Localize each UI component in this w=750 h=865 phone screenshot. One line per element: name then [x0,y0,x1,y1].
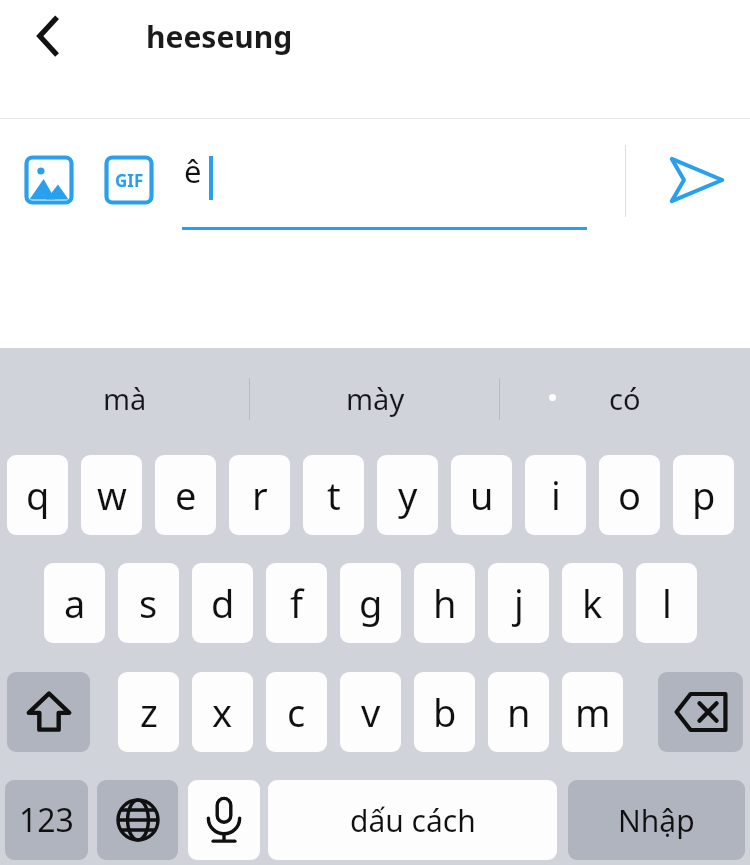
staticText: u [470,469,494,521]
staticText: x [212,686,233,738]
button[interactable]: v [340,672,401,752]
staticText: Nhập [618,800,695,841]
button[interactable]: c [266,672,327,752]
staticText: h [433,577,457,629]
button[interactable]: o [599,455,660,535]
button[interactable]: n [488,672,549,752]
staticText: n [507,686,531,738]
staticText: heeseung [146,16,293,57]
staticText: f [290,577,304,629]
button[interactable]: m [562,672,623,752]
button[interactable]: r [229,455,290,535]
staticText: r [252,469,268,521]
staticText: e [175,469,197,521]
staticText: s [139,577,158,629]
staticText: ê [184,150,202,192]
button[interactable]: x [192,672,253,752]
staticText: i [551,469,561,521]
button[interactable]: u [451,455,512,535]
staticText: l [662,577,672,629]
button[interactable]: b [414,672,475,752]
staticText: mà [103,379,147,418]
button[interactable]: z [118,672,179,752]
button[interactable]: Backspace [658,672,743,752]
staticText: GIF [115,169,144,192]
staticText: mày [346,379,405,418]
button[interactable]: e [155,455,216,535]
staticText: j [514,577,524,629]
staticText: w [97,469,127,521]
staticText: o [618,469,641,521]
staticText: a [64,577,86,629]
staticText: g [359,577,383,629]
button[interactable]: mày [250,348,500,448]
button[interactable]: y [377,455,438,535]
button[interactable]: dấu cách [268,780,557,860]
button[interactable]: 123 [5,780,88,860]
staticText: dấu cách [350,800,476,841]
staticText: d [211,577,235,629]
button[interactable]: Send [655,148,735,212]
staticText: có [609,379,641,418]
button[interactable]: Shift [7,672,90,752]
button[interactable]: s [118,563,179,643]
button[interactable]: a [44,563,105,643]
staticText: z [140,686,158,738]
staticText: k [582,577,603,629]
staticText: c [287,686,306,738]
button[interactable]: l [636,563,697,643]
staticText: q [26,469,50,521]
button[interactable]: t [303,455,364,535]
button[interactable]: Send photo [18,150,80,210]
button[interactable]: Nhập [568,780,745,860]
button[interactable]: ê [182,146,587,230]
button[interactable]: Change language [97,780,178,860]
button[interactable]: w [81,455,142,535]
staticText: m [575,686,611,738]
button[interactable]: Send GIF [98,150,160,210]
button[interactable]: Voice input [188,780,260,860]
button[interactable]: j [488,563,549,643]
button[interactable]: q [7,455,68,535]
staticText: p [692,469,716,521]
staticText: v [361,686,381,738]
staticText: 123 [19,798,74,842]
staticText: b [433,686,457,738]
staticText: y [398,469,418,521]
button[interactable]: Back [14,7,72,63]
staticText: t [327,469,341,521]
button[interactable]: h [414,563,475,643]
button[interactable]: d [192,563,253,643]
button[interactable]: mà [0,348,250,448]
button[interactable]: g [340,563,401,643]
button[interactable]: p [673,455,734,535]
button[interactable]: f [266,563,327,643]
button[interactable]: i [525,455,586,535]
button[interactable]: có [500,348,750,448]
button[interactable]: k [562,563,623,643]
